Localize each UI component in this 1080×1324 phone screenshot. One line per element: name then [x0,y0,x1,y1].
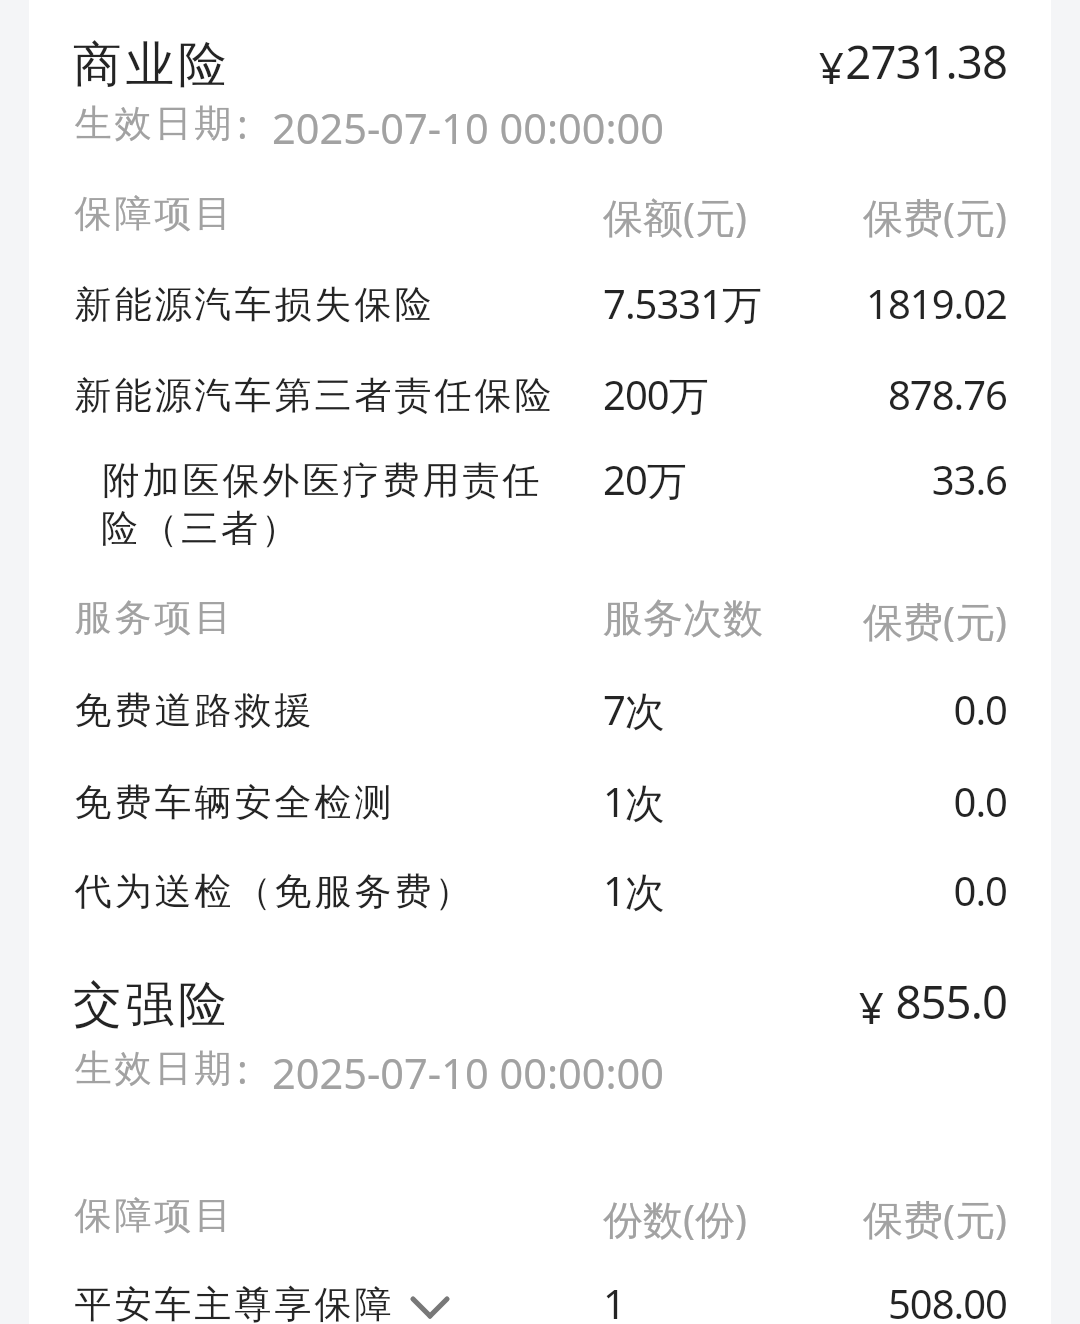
staticText: 代为送检（免服务费） [73,868,473,915]
staticText: 服务次数 [603,593,763,643]
staticText: 878.76 [607,367,1007,421]
staticText: 平安车主尊享保障 [73,1281,393,1324]
staticText: ¥ [824,977,884,1037]
staticText: 33.6 [607,452,1007,506]
staticText: 2731.38 [607,30,1007,92]
staticText: 0.0 [607,682,1007,736]
staticText: 保障项目 [73,1192,233,1239]
staticText: ¥ [784,37,844,97]
staticText: 新能源汽车损失保险 [73,281,433,328]
staticText: : [237,96,248,150]
staticText: 保费(元) [607,1191,1007,1246]
staticText: 1819.02 [607,276,1007,330]
staticText: 免费道路救援 [73,687,313,734]
staticText: 免费车辆安全检测 [73,779,393,826]
staticText: 交强险 [73,974,231,1035]
staticText: 2025-07-10 00:00:00 [272,100,665,157]
staticText: 份数(份) [603,1191,747,1246]
staticText: 商业险 [73,34,231,95]
staticText: 7次 [603,682,664,737]
staticText: 生效日期 [73,1045,233,1092]
staticText: 保障项目 [73,190,233,237]
button[interactable]: 平安车主尊享保障 [29,1267,1051,1324]
staticText: 保额(元) [603,189,747,244]
staticText: 200万 [603,367,708,422]
staticText: 855.0 [607,970,1007,1032]
staticText: 保费(元) [607,189,1007,244]
staticText: 508.00 [607,1276,1007,1324]
staticText: 新能源汽车第三者责任保险 [73,372,553,419]
staticText: 1次 [603,774,664,829]
other: 展开保障详情 [400,1284,460,1324]
staticText: 1 [603,1276,625,1324]
staticText: 20万 [603,452,686,507]
staticText: 0.0 [607,774,1007,828]
staticText: 0.0 [607,863,1007,917]
staticText: 保费(元) [607,593,1007,648]
staticText: : [237,1041,248,1095]
staticText: 1次 [603,863,664,918]
staticText: 服务项目 [73,594,233,641]
staticText: 附加医保外医疗费用责任 险（三者） [101,457,541,552]
staticText: 2025-07-10 00:00:00 [272,1045,665,1102]
staticText: 生效日期 [73,100,233,147]
staticText: 7.5331万 [603,276,762,331]
